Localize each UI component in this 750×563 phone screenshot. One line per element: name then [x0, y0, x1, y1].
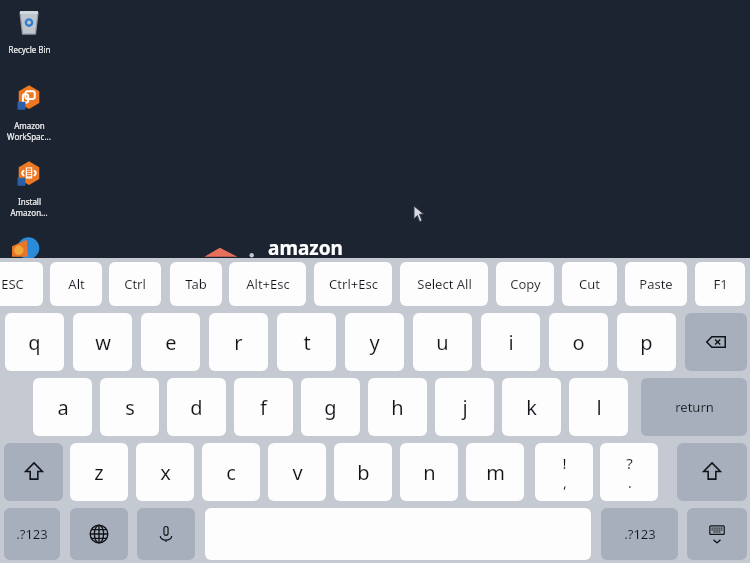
button[interactable]: u — [413, 313, 472, 371]
staticText: amazon — [268, 235, 343, 258]
button[interactable]: m — [466, 443, 524, 501]
button[interactable]: l — [569, 378, 628, 436]
staticText: . — [628, 473, 632, 492]
staticText: Paste — [639, 275, 673, 293]
staticText: Amazon... — [10, 207, 48, 218]
staticText: Alt — [68, 275, 85, 293]
staticText: v — [292, 459, 303, 486]
button[interactable]: i — [481, 313, 540, 371]
button[interactable]: Alt — [50, 262, 102, 306]
staticText: w — [95, 329, 111, 356]
staticText: m — [486, 459, 505, 486]
button[interactable]: f — [234, 378, 293, 436]
button[interactable]: Voice input — [137, 508, 195, 560]
button[interactable]: e — [141, 313, 200, 371]
staticText: Ctrl+Esc — [329, 275, 378, 293]
staticText: r — [234, 329, 243, 356]
staticText: Copy — [510, 275, 541, 293]
staticText: Recycle Bin — [8, 44, 51, 55]
button[interactable]: .?123 — [601, 508, 678, 560]
button[interactable]: Cut — [562, 262, 617, 306]
staticText: return — [675, 398, 714, 416]
button[interactable]: q — [5, 313, 64, 371]
button[interactable]: Backspace — [685, 313, 747, 371]
button[interactable]: F1 — [695, 262, 745, 306]
staticText: Select All — [417, 275, 472, 293]
button[interactable]: c — [202, 443, 260, 501]
button[interactable]: Tab — [170, 262, 222, 306]
staticText: Ctrl — [124, 275, 146, 293]
staticText: c — [226, 459, 236, 486]
button[interactable]: b — [334, 443, 392, 501]
button[interactable]: w — [73, 313, 132, 371]
staticText: ESC — [1, 275, 24, 293]
staticText: k — [526, 394, 537, 421]
button[interactable]: y — [345, 313, 404, 371]
button[interactable]: Alt+Esc — [229, 262, 306, 306]
staticText: q — [28, 329, 41, 356]
staticText: f — [260, 394, 267, 421]
staticText: t — [303, 329, 311, 356]
staticText: y — [369, 329, 380, 356]
button[interactable]: Paste — [625, 262, 687, 306]
button[interactable]: g — [301, 378, 360, 436]
staticText: Install — [18, 196, 41, 207]
staticText: o — [572, 329, 585, 356]
staticText: s — [125, 394, 135, 421]
staticText: x — [160, 459, 171, 486]
staticText: Tab — [185, 275, 207, 293]
staticText: a — [57, 394, 69, 421]
button[interactable]: v — [268, 443, 326, 501]
button[interactable]: ? — [600, 443, 658, 501]
button[interactable]: Shift — [677, 443, 747, 501]
button[interactable]: d — [167, 378, 226, 436]
button[interactable]: n — [400, 443, 458, 501]
staticText: u — [436, 329, 449, 356]
staticText: n — [423, 459, 436, 486]
button[interactable]: p — [617, 313, 676, 371]
staticText: WorkSpac... — [7, 131, 51, 142]
staticText: d — [190, 394, 203, 421]
button[interactable]: h — [368, 378, 427, 436]
staticText: Cut — [579, 275, 600, 293]
button[interactable]: Copy — [496, 262, 554, 306]
button[interactable]: return — [641, 378, 747, 436]
staticText: F1 — [713, 275, 728, 293]
staticText: .?123 — [624, 525, 656, 543]
staticText: Alt+Esc — [246, 275, 290, 293]
staticText: g — [324, 394, 337, 421]
staticText: b — [357, 459, 370, 486]
staticText: .?123 — [16, 525, 48, 543]
button[interactable]: r — [209, 313, 268, 371]
staticText: e — [165, 329, 177, 356]
button[interactable]: t — [277, 313, 336, 371]
button[interactable]: k — [502, 378, 561, 436]
button[interactable]: Recycle Bin — [0, 6, 58, 55]
button[interactable]: .?123 — [4, 508, 60, 560]
button[interactable]: a — [33, 378, 92, 436]
button[interactable]: Shift — [4, 443, 63, 501]
button[interactable]: Firefox — [10, 232, 50, 258]
staticText: z — [94, 459, 104, 486]
button[interactable]: o — [549, 313, 608, 371]
button[interactable]: j — [435, 378, 494, 436]
button[interactable]: Hide keyboard — [687, 508, 747, 560]
button[interactable]: z — [70, 443, 128, 501]
button[interactable]: x — [136, 443, 194, 501]
button[interactable]: Change keyboard language — [70, 508, 128, 560]
staticText: Amazon — [14, 120, 45, 131]
button[interactable]: Ctrl+Esc — [314, 262, 392, 306]
button[interactable]: ESC — [0, 262, 43, 306]
button[interactable]: Install Amazon — [0, 158, 58, 218]
staticText: p — [640, 329, 653, 356]
button[interactable]: Ctrl — [109, 262, 161, 306]
button[interactable]: s — [100, 378, 159, 436]
staticText: h — [391, 394, 404, 421]
button[interactable]: Amazon WorkSpaces — [0, 82, 58, 142]
button[interactable]: Select All — [400, 262, 488, 306]
staticText: ! — [562, 453, 567, 473]
button[interactable]: ! — [535, 443, 593, 501]
staticText: ? — [626, 453, 633, 473]
staticText: l — [596, 394, 602, 421]
